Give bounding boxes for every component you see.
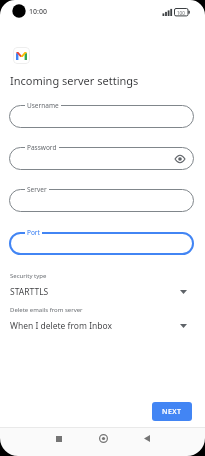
button[interactable] [88,427,118,450]
staticText: NEXT [162,407,182,417]
staticText: When I delete from Inbox [10,320,112,332]
button[interactable]: Port [9,232,194,255]
button[interactable]: Server [9,189,194,212]
staticText: Incoming server settings [10,73,139,88]
staticText: 100 [177,10,185,16]
staticText: Password [27,143,57,152]
staticText: 10:00 [29,7,47,17]
button[interactable]: Password [9,147,194,170]
button[interactable] [44,427,74,450]
staticText: Port [27,228,40,237]
button[interactable]: Username [9,105,194,128]
staticText: Delete emails from server [10,306,83,314]
staticText: STARTTLS [10,286,49,298]
button[interactable] [132,427,162,450]
button[interactable]: Security type [10,271,195,296]
staticText: Server [27,185,47,194]
button[interactable]: Delete emails from server [10,305,195,330]
staticText: Security type [10,272,47,280]
button[interactable]: NEXT [152,402,192,421]
staticText: Username [27,101,59,110]
